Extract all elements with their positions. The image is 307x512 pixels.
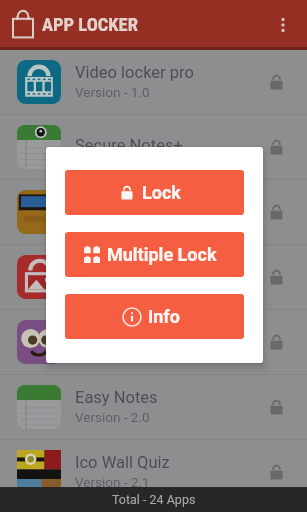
staticText: Info	[148, 306, 180, 327]
staticText: Lock	[142, 182, 181, 203]
button[interactable]: Total - 24 Apps	[0, 487, 307, 512]
button[interactable]	[0, 245, 307, 309]
button[interactable]: Ico Wall Quiz	[0, 440, 307, 504]
button[interactable]: App Locker	[12, 8, 34, 38]
staticText: Secure Notes+	[75, 136, 183, 155]
staticText: Ico Wall Quiz	[75, 453, 170, 472]
button[interactable]: Video locker pro	[0, 50, 307, 114]
button[interactable]: Info	[65, 294, 244, 339]
staticText: Version - 2.0	[75, 409, 150, 425]
button[interactable]: Secure Notes+	[0, 115, 307, 179]
button[interactable]: Multiple Lock	[65, 232, 244, 277]
staticText: Version - 2.1	[75, 474, 150, 490]
staticText: Video locker pro	[75, 63, 194, 82]
button[interactable]	[0, 310, 307, 374]
staticText: Multiple Lock	[107, 244, 217, 265]
staticText: APP LOCKER	[42, 14, 138, 36]
staticText: Easy Notes	[75, 388, 158, 407]
button[interactable]: Easy Notes	[0, 375, 307, 439]
button[interactable]: More options	[265, 7, 301, 43]
staticText: Version - 1.0	[75, 84, 150, 100]
button[interactable]: Lock	[65, 170, 244, 215]
staticText: Total - 24 Apps	[112, 492, 196, 507]
button[interactable]	[0, 180, 307, 244]
